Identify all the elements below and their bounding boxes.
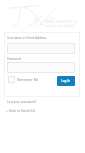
- button[interactable]: Remember Me: [8, 76, 39, 83]
- button[interactable]: Lost your password?: [7, 100, 37, 104]
- staticText: Remember Me: [17, 78, 39, 82]
- button[interactable]: ← Back to Denali Ink: [6, 109, 36, 113]
- button[interactable]: Log In: [57, 76, 75, 86]
- staticText: Password: [7, 57, 21, 61]
- button[interactable]: Username or Email Address: [7, 43, 75, 54]
- staticText: DENALI INK TATTOO CO: [45, 20, 78, 24]
- staticText: originals ink collective: [45, 24, 75, 28]
- button[interactable]: Password: [7, 62, 75, 73]
- staticText: Username or Email Address: [7, 36, 47, 40]
- staticText: Log In: [61, 79, 71, 83]
